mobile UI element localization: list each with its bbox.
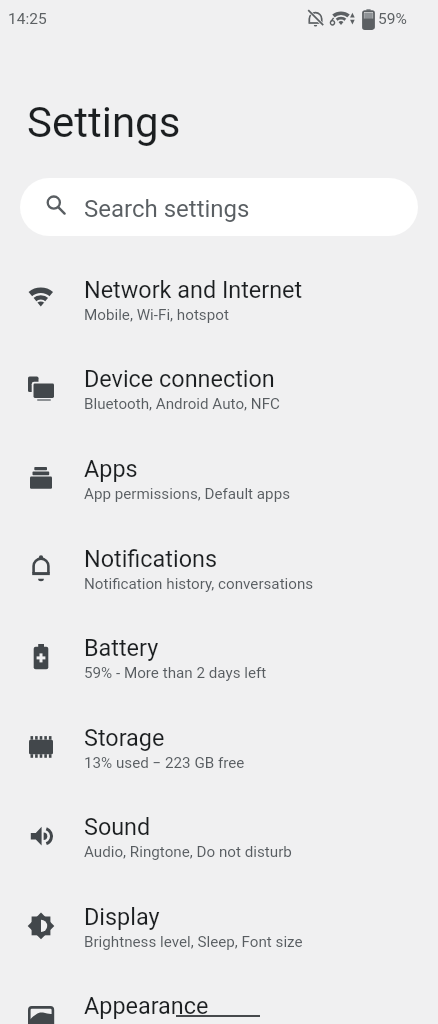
staticText: Search settings — [84, 195, 250, 223]
staticText: 13% used − 223 GB free — [84, 754, 245, 772]
button[interactable]: Device connection — [0, 334, 438, 424]
staticText: Notifications — [84, 545, 217, 572]
staticText: 14:25 — [8, 10, 47, 28]
button[interactable]: Notifications — [0, 514, 438, 604]
staticText: 59% - More than 2 days left — [84, 664, 267, 682]
button[interactable]: Apps — [0, 424, 438, 514]
staticText: Appearance — [84, 992, 209, 1019]
staticText: Storage — [84, 724, 165, 751]
button[interactable]: Network and Internet — [0, 245, 438, 335]
button[interactable]: Search settings — [20, 178, 418, 236]
button[interactable]: Sound — [0, 782, 438, 872]
staticText: Battery — [84, 634, 159, 661]
button[interactable]: Display — [0, 872, 438, 962]
staticText: Mobile, Wi-Fi, hotspot — [84, 306, 229, 324]
button[interactable]: Storage — [0, 693, 438, 783]
staticText: Device connection — [84, 365, 275, 392]
staticText: App permissions, Default apps — [84, 485, 291, 503]
staticText: Notification history, conversations — [84, 575, 314, 593]
staticText: Network and Internet — [84, 276, 303, 303]
staticText: 59% — [378, 10, 407, 28]
staticText: Apps — [84, 455, 138, 482]
staticText: Bluetooth, Android Auto, NFC — [84, 395, 280, 413]
staticText: Display — [84, 903, 160, 930]
button[interactable]: Appearance — [0, 961, 438, 1024]
staticText: Audio, Ringtone, Do not disturb — [84, 843, 292, 861]
staticText: Sound — [84, 813, 151, 840]
staticText: Brightness level, Sleep, Font size — [84, 933, 303, 951]
staticText: Settings — [27, 98, 181, 147]
button[interactable]: Battery — [0, 603, 438, 693]
